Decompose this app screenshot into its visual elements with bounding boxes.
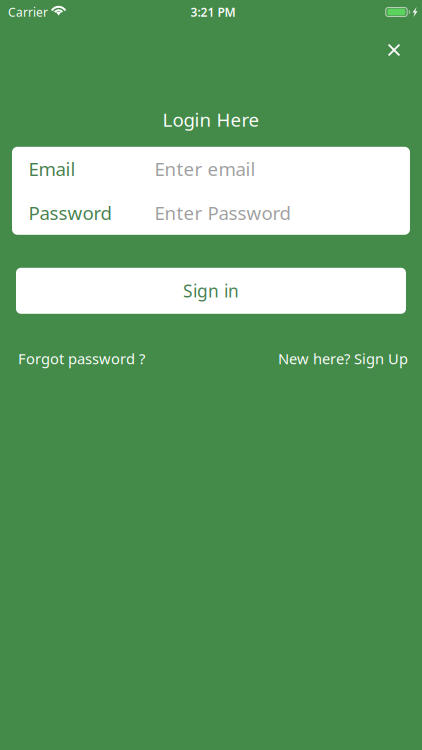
staticText: Carrier <box>8 4 48 20</box>
staticText: Enter Password <box>154 200 290 225</box>
staticText: Email <box>28 156 75 181</box>
button[interactable]: Forgot password ? <box>18 349 145 368</box>
staticText: Password <box>28 200 111 225</box>
staticText: New here? Sign Up <box>278 349 408 368</box>
staticText: Forgot password ? <box>18 349 145 368</box>
staticText: Enter email <box>154 156 255 181</box>
button[interactable]: Close <box>377 33 411 67</box>
button[interactable]: New here? Sign Up <box>278 349 408 368</box>
button[interactable]: Sign in <box>16 268 406 314</box>
staticText: 3:21 PM <box>190 4 235 20</box>
staticText: Sign in <box>183 279 239 302</box>
button[interactable]: Password <box>28 191 393 235</box>
button[interactable]: Email <box>28 147 393 191</box>
staticText: Login Here <box>162 107 259 132</box>
